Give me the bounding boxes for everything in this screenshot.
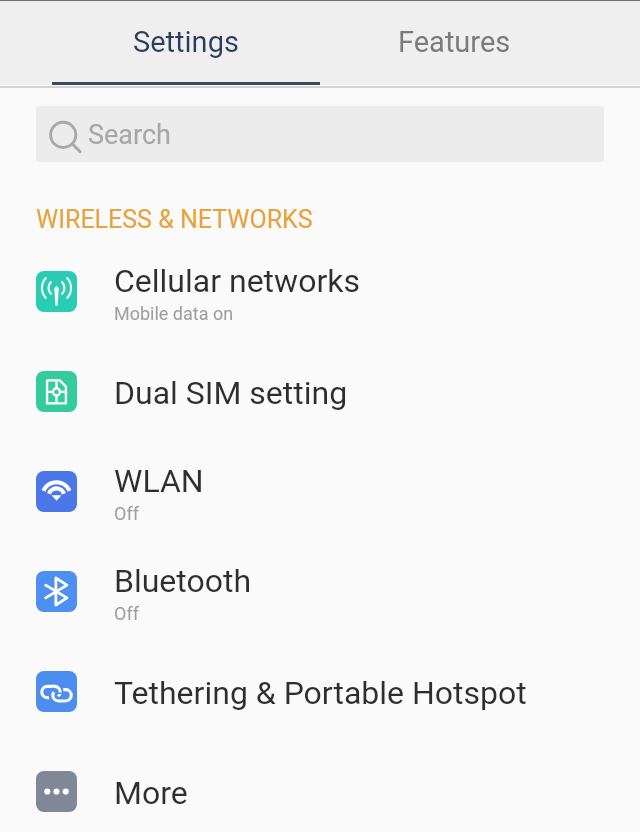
staticText: Off — [114, 503, 139, 524]
button[interactable]: WLAN — [0, 441, 640, 541]
staticText: Settings — [133, 25, 239, 59]
button[interactable]: Cellular networks — [0, 241, 640, 341]
staticText: Mobile data on — [114, 303, 234, 324]
staticText: Off — [114, 603, 139, 624]
staticText: More — [114, 774, 188, 812]
button[interactable]: Features — [320, 0, 588, 85]
staticText: WIRELESS & NETWORKS — [36, 205, 313, 234]
button[interactable]: Search — [36, 106, 604, 162]
button[interactable]: Settings — [52, 0, 320, 85]
button[interactable]: Bluetooth — [0, 541, 640, 641]
staticText: Bluetooth — [114, 562, 252, 600]
button[interactable]: Tethering & Portable Hotspot — [0, 641, 640, 741]
other: Search — [49, 118, 82, 151]
button[interactable]: More — [0, 741, 640, 832]
staticText: WLAN — [114, 462, 204, 500]
staticText: Dual SIM setting — [114, 374, 348, 412]
button[interactable]: Dual SIM setting — [0, 341, 640, 441]
staticText: Search — [88, 119, 171, 151]
staticText: Features — [398, 25, 511, 59]
staticText: Cellular networks — [114, 262, 360, 300]
staticText: Tethering & Portable Hotspot — [114, 674, 527, 712]
